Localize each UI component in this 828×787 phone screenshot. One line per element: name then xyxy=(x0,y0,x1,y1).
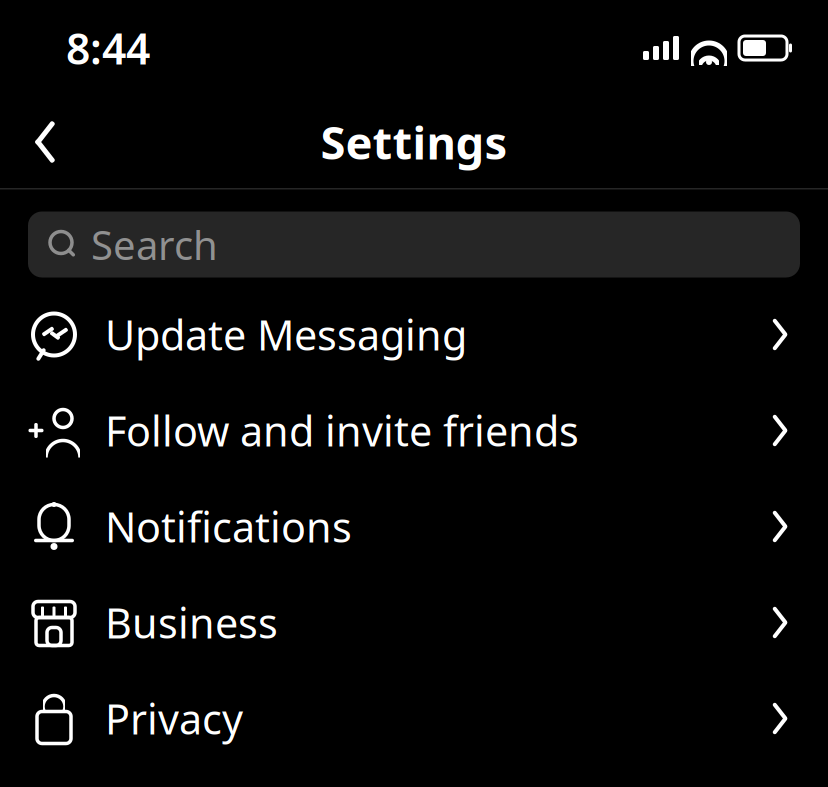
staticText: Update Messaging xyxy=(105,307,467,362)
button[interactable]: Back xyxy=(12,109,78,175)
staticText: Business xyxy=(105,595,278,650)
button[interactable]: Privacy xyxy=(0,670,828,766)
button[interactable]: Follow and invite friends xyxy=(0,382,828,478)
button[interactable]: Search xyxy=(28,211,800,277)
button[interactable]: Business xyxy=(0,574,828,670)
staticText: Settings xyxy=(320,112,507,172)
staticText: 8:44 xyxy=(66,20,150,76)
staticText: Notifications xyxy=(105,499,352,554)
staticText: Follow and invite friends xyxy=(105,403,579,458)
staticText: Search xyxy=(91,218,218,271)
button[interactable]: Update Messaging xyxy=(0,286,828,382)
staticText: Privacy xyxy=(105,691,243,746)
button[interactable]: Notifications xyxy=(0,478,828,574)
